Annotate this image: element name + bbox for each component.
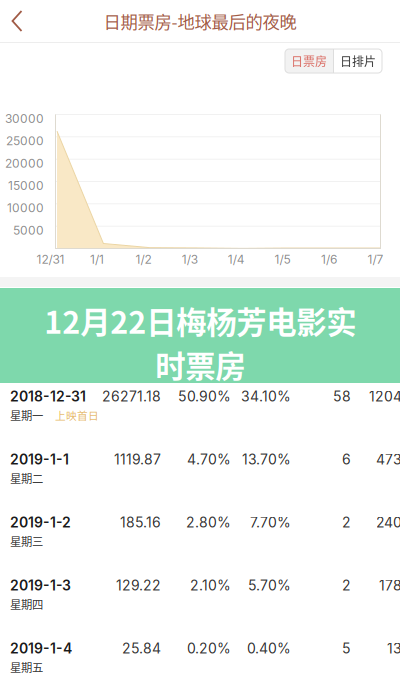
staticText: 1/1 (90, 252, 104, 267)
staticText: 1/3 (182, 252, 198, 267)
staticText: 58 (333, 388, 351, 405)
staticText: 2019-1-2 (10, 514, 71, 531)
staticText: 26271.18 (102, 388, 161, 405)
staticText: 1/5 (275, 252, 291, 267)
staticText: 星期四 (10, 596, 43, 612)
staticText: 50.90% (178, 388, 231, 405)
staticText: 星期二 (10, 470, 43, 486)
button[interactable]: 指标自定义 (308, 299, 385, 319)
staticText: 5000 (13, 223, 44, 238)
staticText: 12042 (369, 388, 400, 405)
staticText: 0.20% (187, 640, 231, 657)
staticText: 20000 (5, 156, 44, 171)
staticText: 星期五 (10, 659, 43, 675)
staticText: 指标自定义 (308, 299, 373, 319)
staticText: 7.70% (250, 514, 291, 531)
staticText: 2403 (376, 514, 400, 531)
staticText: 12/31 (37, 252, 65, 267)
staticText: 日排片 (340, 52, 376, 70)
staticText: 日期票房-地球最后的夜晚 (103, 8, 296, 34)
staticText: 1119.87 (114, 451, 161, 468)
staticText: 30000 (5, 111, 44, 126)
staticText: 排片占比 (242, 343, 290, 360)
staticText: 1/7 (367, 252, 383, 267)
staticText: 10000 (7, 201, 44, 215)
staticText: 2019-1-1 (10, 451, 69, 468)
staticText: 2.80% (186, 514, 231, 531)
button[interactable]: 日票房 (285, 49, 333, 73)
staticText: 星期一 (10, 407, 43, 423)
staticText: 138 (387, 640, 400, 657)
staticText: 2018-12-31 (10, 388, 86, 405)
staticText: 15000 (8, 178, 44, 193)
staticText: 12月22日梅杨芳电影实时票房 (44, 298, 356, 386)
staticText: 4.70% (187, 451, 231, 468)
staticText: 1/4 (228, 252, 245, 267)
staticText: 上映首日 (55, 407, 99, 423)
staticText: 185.16 (120, 514, 161, 531)
staticText: 日票房 (291, 52, 327, 70)
staticText: 2019-1-3 (10, 577, 71, 594)
staticText: 4732 (376, 451, 400, 468)
staticText: 票房占比 (177, 343, 225, 360)
staticText: 2.10% (190, 577, 231, 594)
staticText: 25000 (6, 134, 44, 148)
staticText: 票房明细 (13, 298, 73, 320)
staticText: 5.70% (248, 577, 291, 594)
staticText: 6 (342, 451, 351, 468)
staticText: 1/2 (135, 252, 151, 267)
staticText: 25.84 (122, 640, 161, 657)
staticText: 星期三 (10, 533, 43, 549)
staticText: 2 (342, 577, 351, 594)
staticText: 13.70% (242, 451, 291, 468)
staticText: 1/6 (321, 252, 337, 267)
button[interactable]: 日排片 (334, 49, 382, 73)
staticText: 2019-1-4 (10, 640, 72, 657)
staticText: 5 (342, 640, 351, 657)
staticText: 2 (342, 514, 351, 531)
staticText: 129.22 (116, 577, 161, 594)
button[interactable]: Back (0, 0, 34, 42)
staticText: 34.10% (241, 388, 291, 405)
staticText: 1782 (379, 577, 400, 594)
staticText: 0.40% (247, 640, 291, 657)
